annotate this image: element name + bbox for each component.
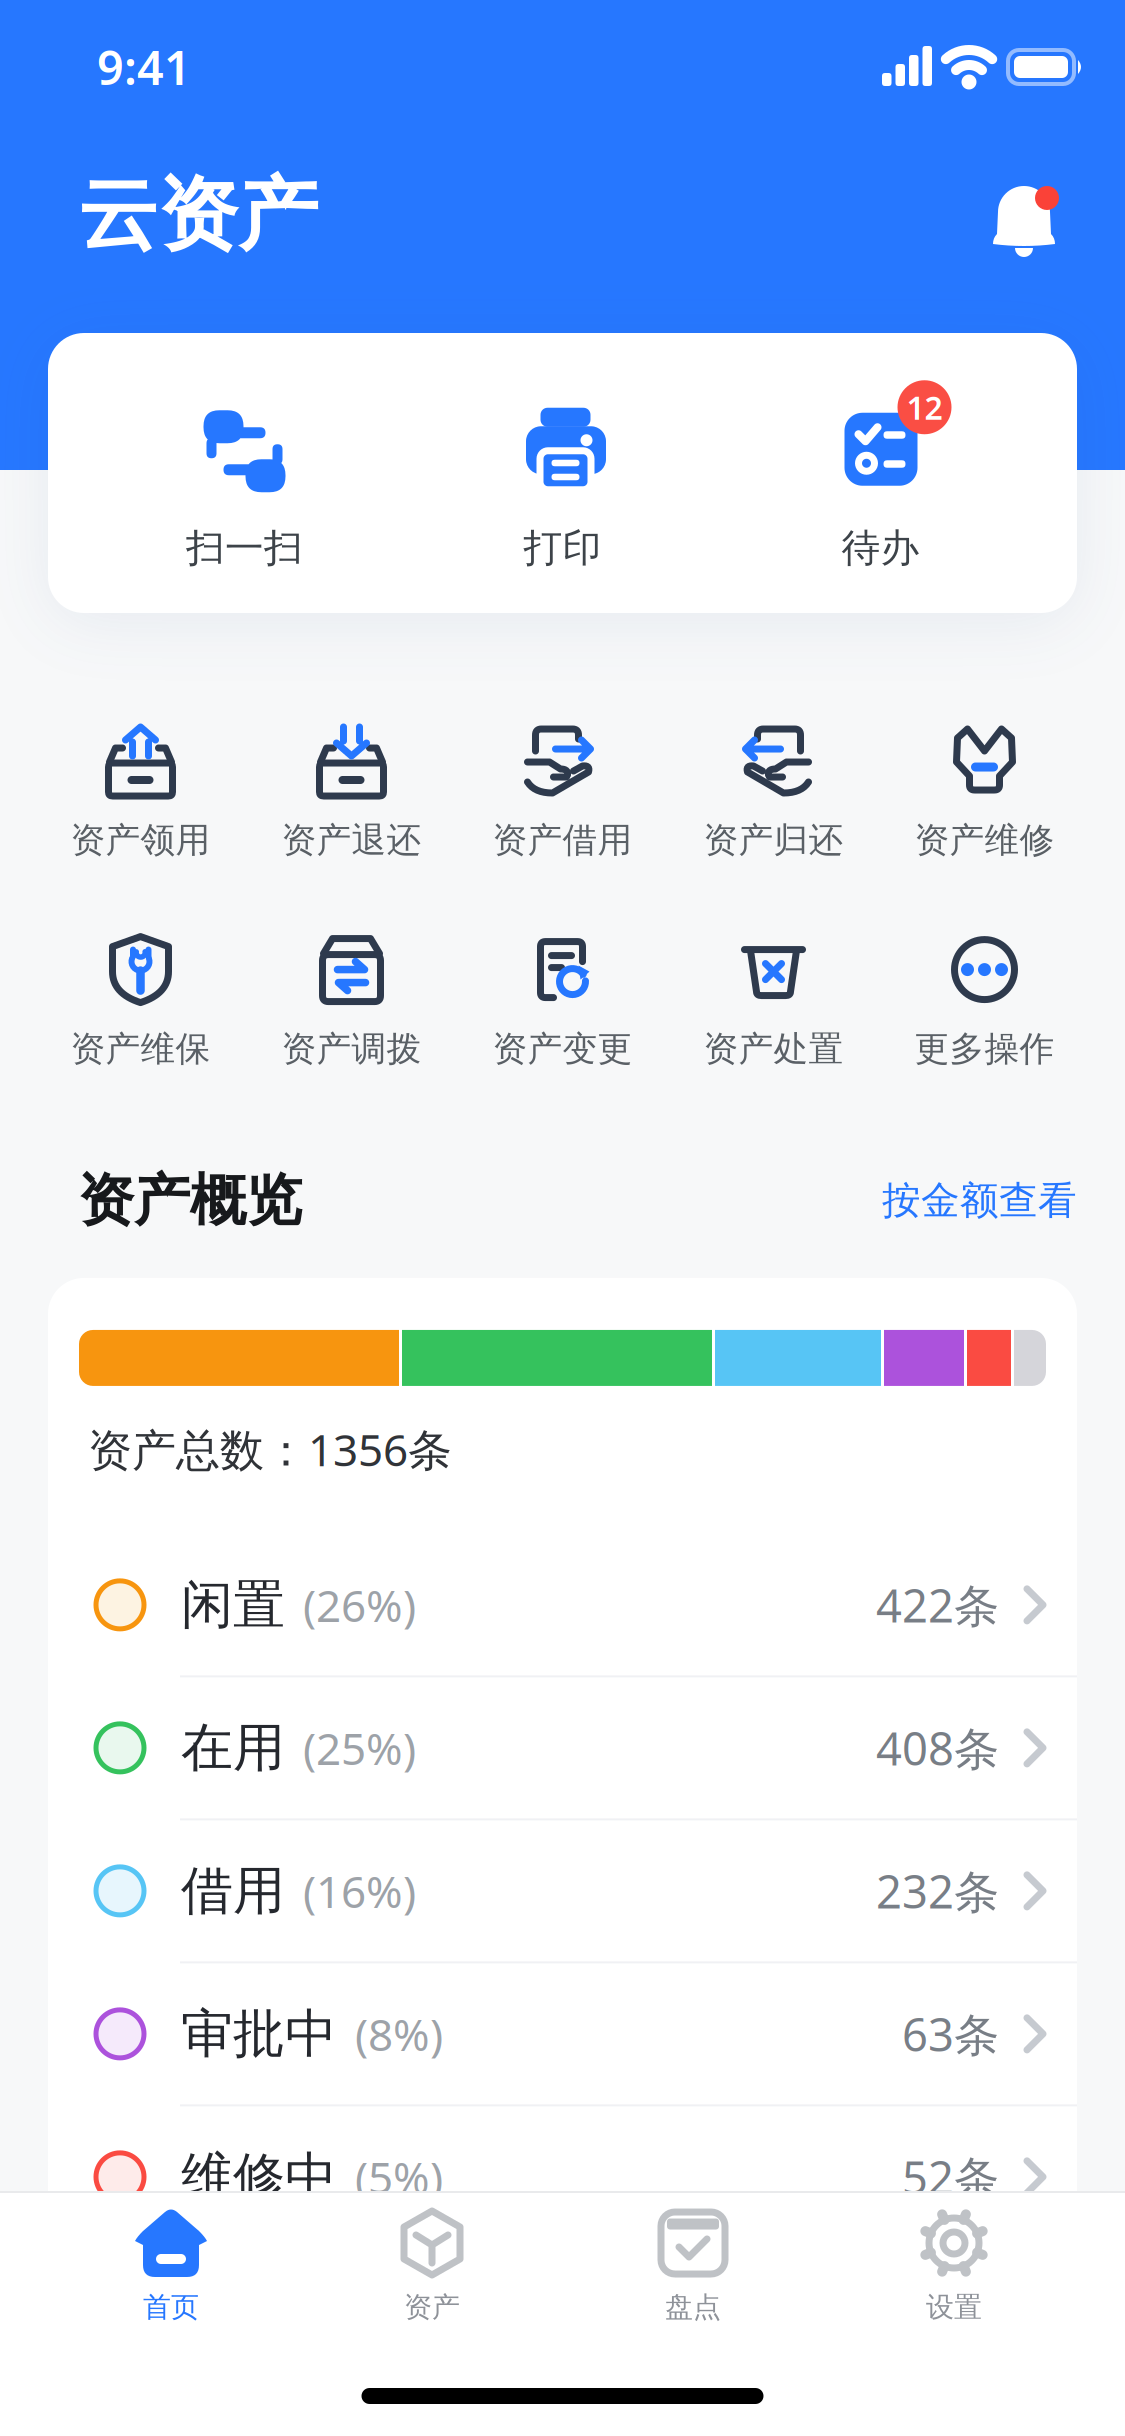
button[interactable]: 资产维保 xyxy=(35,934,246,1070)
button[interactable]: 设置 xyxy=(823,2207,1084,2324)
button[interactable]: 在用 xyxy=(48,1677,1077,1818)
button[interactable]: 打印 xyxy=(403,396,721,572)
staticText: 422条 xyxy=(876,1575,999,1635)
staticText: (8%) xyxy=(355,2005,443,2063)
button[interactable]: 资产归还 xyxy=(668,725,879,862)
button[interactable]: 资产调拨 xyxy=(246,934,457,1070)
staticText: 设置 xyxy=(926,2290,982,2324)
button[interactable]: 借用 xyxy=(48,1820,1077,1961)
staticText: (16%) xyxy=(303,1862,416,1920)
staticText: 资产维修 xyxy=(914,819,1054,862)
staticText: 资产领用 xyxy=(70,819,210,862)
staticText: 云资产 xyxy=(78,166,318,264)
button[interactable]: 按金额查看 xyxy=(882,1177,1077,1224)
staticText: 按金额查看 xyxy=(882,1177,1077,1224)
staticText: 更多操作 xyxy=(914,1028,1054,1070)
staticText: 资产归还 xyxy=(703,819,843,862)
button[interactable]: 维修中 xyxy=(48,2106,1077,2247)
staticText: 资产维保 xyxy=(70,1028,210,1070)
staticText: 借用 xyxy=(181,1859,285,1923)
staticText: (26%) xyxy=(303,1576,416,1634)
staticText: 9:41 xyxy=(97,36,191,98)
staticText: 首页 xyxy=(143,2290,199,2324)
staticText: 闲置 xyxy=(181,1573,285,1637)
button[interactable]: 更多操作 xyxy=(879,934,1090,1070)
staticText: 12 xyxy=(906,386,942,428)
button[interactable]: 资产维修 xyxy=(879,725,1090,862)
staticText: 资产退还 xyxy=(281,819,421,862)
staticText: 扫一扫 xyxy=(186,524,303,572)
staticText: 232条 xyxy=(876,1861,999,1921)
button[interactable]: 盘点 xyxy=(562,2207,823,2324)
staticText: 资产总数：1356条 xyxy=(88,1420,452,1478)
button[interactable]: 审批中 xyxy=(48,1963,1077,2104)
staticText: (25%) xyxy=(303,1719,416,1777)
staticText: 52条 xyxy=(902,2147,999,2207)
button[interactable]: 通知 xyxy=(974,168,1074,268)
staticText: 资产调拨 xyxy=(281,1028,421,1070)
staticText: 盘点 xyxy=(665,2290,721,2324)
button[interactable]: 12 xyxy=(721,396,1039,572)
staticText: 资产处置 xyxy=(703,1028,843,1070)
button[interactable]: 资产 xyxy=(301,2207,562,2324)
button[interactable]: 资产退还 xyxy=(246,725,457,862)
staticText: 资产变更 xyxy=(492,1028,632,1070)
staticText: 待办 xyxy=(841,524,919,572)
button[interactable]: 资产处置 xyxy=(668,934,879,1070)
staticText: (5%) xyxy=(355,2148,443,2206)
button[interactable]: 扫一扫 xyxy=(85,396,403,572)
button[interactable]: 资产变更 xyxy=(457,934,668,1070)
staticText: 审批中 xyxy=(181,2002,337,2066)
staticText: 63条 xyxy=(902,2004,999,2064)
staticText: 维修中 xyxy=(181,2145,337,2209)
staticText: 打印 xyxy=(523,524,601,572)
button[interactable]: 首页 xyxy=(40,2207,301,2324)
staticText: 资产借用 xyxy=(492,819,632,862)
staticText: 408条 xyxy=(876,1718,999,1778)
button[interactable]: 闲置 xyxy=(48,1534,1077,1675)
button[interactable]: 资产借用 xyxy=(457,725,668,862)
button[interactable]: 资产领用 xyxy=(35,725,246,862)
staticText: 资产 xyxy=(404,2290,460,2324)
staticText: 资产概览 xyxy=(78,1166,302,1235)
staticText: 在用 xyxy=(181,1716,285,1780)
